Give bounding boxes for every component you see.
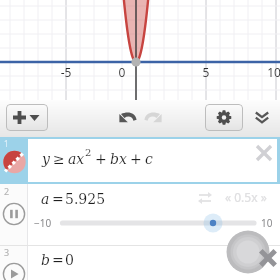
staticText: ≥: [53, 151, 65, 167]
staticText: ax: [68, 151, 85, 167]
button[interactable]: Slider for a: [58, 216, 280, 232]
button[interactable]: Undo: [114, 104, 140, 131]
staticText: 5: [190, 64, 222, 80]
button[interactable]: Close: [256, 246, 280, 270]
button[interactable]: Pause animation: [1, 201, 27, 227]
staticText: 1: [4, 138, 9, 149]
staticText: bx: [110, 151, 127, 167]
staticText: +: [130, 151, 142, 167]
staticText: −10: [34, 216, 52, 230]
button[interactable]: Hide keyboard: [226, 230, 270, 274]
staticText: +: [95, 151, 107, 167]
button[interactable]: Animation loop mode: [195, 188, 215, 208]
staticText: c: [145, 151, 153, 167]
button[interactable]: Graph settings: [205, 104, 243, 131]
staticText: 0: [65, 252, 74, 268]
button[interactable]: 3: [0, 245, 280, 280]
button[interactable]: Graph area: [0, 0, 280, 100]
button[interactable]: y: [0, 137, 280, 184]
staticText: -5: [50, 64, 82, 80]
staticText: a: [41, 191, 50, 207]
staticText: 5.925: [65, 191, 106, 207]
button[interactable]: Hide expression list: [248, 104, 276, 131]
staticText: =: [52, 252, 64, 268]
staticText: 2: [4, 185, 10, 197]
button[interactable]: Redo: [141, 104, 167, 131]
button[interactable]: Add expression: [6, 104, 48, 131]
button[interactable]: Animation speed: [218, 186, 274, 208]
staticText: 10: [258, 64, 280, 80]
staticText: 3: [4, 246, 10, 258]
button[interactable]: Play animation: [1, 261, 27, 280]
staticText: 2: [85, 147, 92, 159]
staticText: y: [42, 151, 50, 167]
staticText: b: [41, 252, 50, 268]
button[interactable]: Delete expression: [253, 142, 275, 164]
button[interactable]: 2: [0, 184, 280, 245]
staticText: « 0.5x »: [225, 189, 267, 205]
staticText: 10: [261, 216, 273, 230]
staticText: =: [52, 191, 64, 207]
staticText: 0: [106, 64, 138, 80]
